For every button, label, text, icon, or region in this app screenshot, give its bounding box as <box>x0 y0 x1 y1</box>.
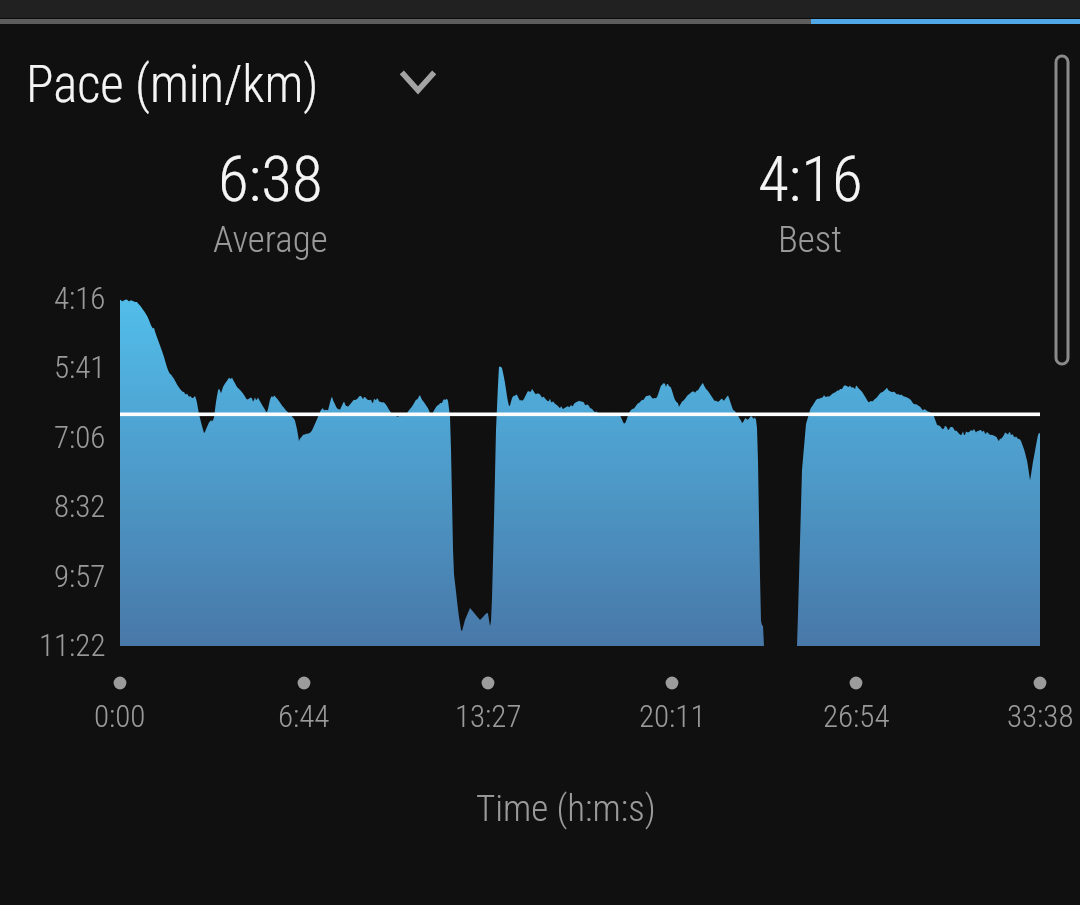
staticText: 7:06 <box>54 419 106 455</box>
other: Change metric <box>399 48 437 122</box>
staticText: 4:16 <box>758 143 863 217</box>
staticText: Best <box>778 218 842 261</box>
staticText: 33:38 <box>1007 698 1074 734</box>
staticText: 6:38 <box>218 143 323 217</box>
staticText: 0:00 <box>94 698 146 734</box>
staticText: 8:32 <box>54 488 106 524</box>
staticText: 5:41 <box>54 349 106 385</box>
staticText: 4:16 <box>54 280 106 316</box>
staticText: 26:54 <box>823 698 890 734</box>
staticText: 13:27 <box>455 698 522 734</box>
staticText: Time (h:m:s) <box>476 787 656 830</box>
staticText: Average <box>213 218 328 261</box>
button[interactable]: Pace (min/km) <box>18 48 445 122</box>
staticText: 20:11 <box>639 698 706 734</box>
button[interactable]: Pace chart <box>120 289 1040 656</box>
staticText: 6:44 <box>278 698 330 734</box>
button[interactable]: 4:16 <box>540 143 1080 283</box>
staticText: 11:22 <box>39 627 106 663</box>
staticText: Pace (min/km) <box>26 55 319 115</box>
staticText: 9:57 <box>54 558 106 594</box>
button[interactable]: 6:38 <box>0 143 540 283</box>
